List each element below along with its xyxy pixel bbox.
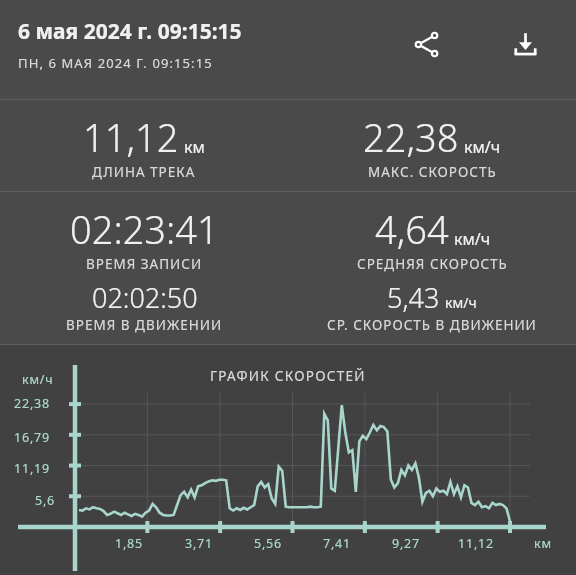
staticText: 7,41 [323,535,352,552]
staticText: км/ч [454,228,491,250]
staticText: 22,38 [363,111,459,163]
staticText: 11,19 [14,460,50,477]
staticText: 02:02:50 [92,279,198,316]
staticText: 4,64 [375,203,449,255]
staticText: 3,71 [185,535,214,552]
staticText: км/ч [22,371,54,388]
button[interactable]: 4,64 [288,192,576,344]
staticText: ДЛИНА ТРЕКА [92,163,196,181]
staticText: 11,12 [83,111,179,163]
button[interactable]: 11,12 [0,100,288,191]
staticText: 5,6 [35,492,56,509]
staticText: ВРЕМЯ В ДВИЖЕНИИ [66,316,223,334]
button[interactable]: 02:23:41 [0,192,288,344]
staticText: 16,79 [14,429,50,446]
staticText: ПН, 6 МАЯ 2024 Г. 09:15:15 [18,54,213,72]
staticText: СР. СКОРОСТЬ В ДВИЖЕНИИ [327,316,537,334]
staticText: ВРЕМЯ ЗАПИСИ [86,255,203,273]
staticText: 11,12 [458,535,494,552]
button[interactable]: Share [406,24,446,64]
staticText: 9,27 [392,535,421,552]
staticText: км [184,136,205,158]
staticText: 5,43 [387,279,440,316]
button[interactable]: 22,38 [288,100,576,191]
staticText: 02:23:41 [70,203,219,255]
staticText: км [534,535,552,552]
staticText: км/ч [464,136,501,158]
staticText: км/ч [445,293,477,312]
staticText: 5,56 [254,535,283,552]
staticText: 1,85 [115,535,144,552]
button[interactable]: Download [505,24,545,64]
staticText: МАКС. СКОРОСТЬ [368,163,497,181]
staticText: СРЕДНЯЯ СКОРОСТЬ [357,255,508,273]
staticText: 22,38 [14,395,50,412]
staticText: ГРАФИК СКОРОСТЕЙ [210,367,366,385]
staticText: 6 мая 2024 г. 09:15:15 [18,17,242,46]
